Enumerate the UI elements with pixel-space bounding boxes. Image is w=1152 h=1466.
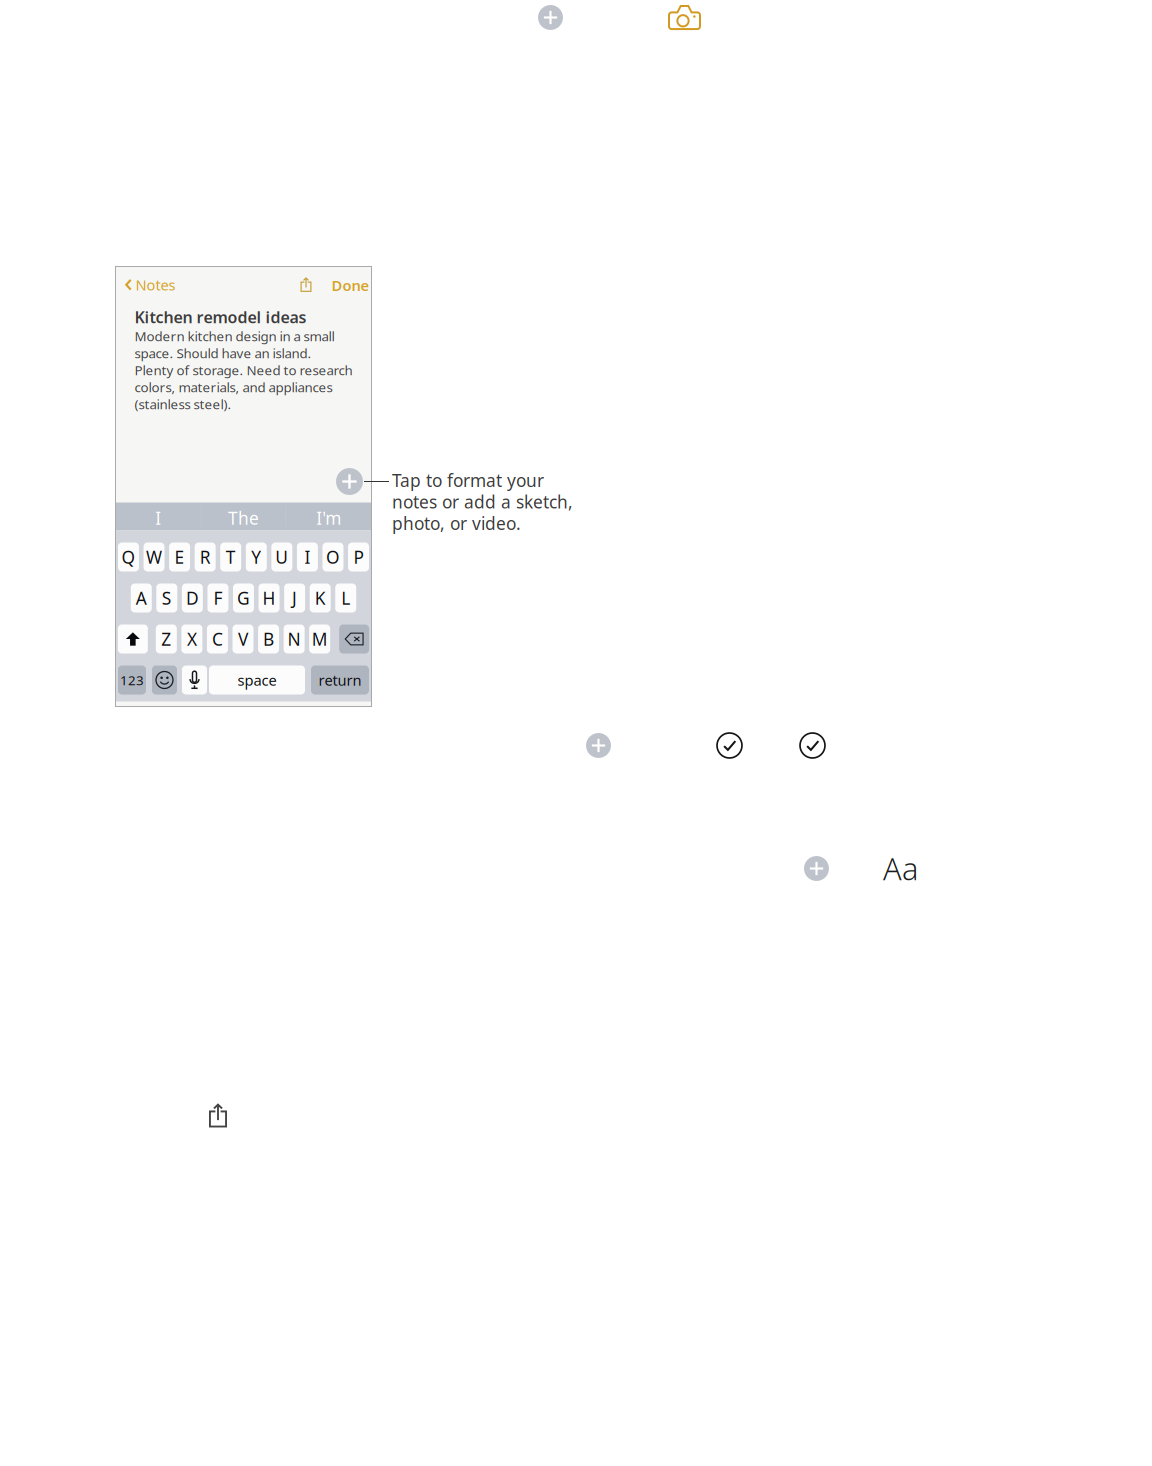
button[interactable]: D [182, 583, 203, 612]
button[interactable]: Delete [339, 624, 369, 653]
button[interactable]: 123 [118, 665, 146, 694]
staticText: T [226, 545, 236, 568]
staticText: K [315, 586, 326, 609]
staticText: Tap to format your [392, 469, 544, 492]
button[interactable]: V [232, 624, 253, 653]
staticText: S [162, 586, 172, 609]
button[interactable]: P [348, 542, 369, 571]
button[interactable]: E [169, 542, 190, 571]
button[interactable]: The [201, 502, 286, 530]
button[interactable]: N [284, 624, 305, 653]
staticText: B [263, 627, 274, 650]
button[interactable]: S [156, 583, 177, 612]
staticText: P [353, 545, 363, 568]
staticText: J [292, 586, 297, 609]
staticText: Q [121, 545, 135, 568]
button[interactable]: B [258, 624, 279, 653]
staticText: photo, or video. [392, 512, 521, 535]
button[interactable]: return [311, 665, 369, 694]
button[interactable]: I'm [286, 502, 371, 530]
button[interactable]: T [220, 542, 241, 571]
button[interactable]: U [271, 542, 292, 571]
staticText: F [213, 586, 222, 609]
staticText: space. Should have an island. [134, 344, 311, 362]
staticText: I [304, 545, 310, 568]
button[interactable]: H [259, 583, 280, 612]
staticText: I [155, 506, 161, 529]
staticText: E [175, 545, 185, 568]
button[interactable]: J [284, 583, 305, 612]
button[interactable]: I [115, 502, 201, 530]
staticText: 123 [120, 671, 144, 689]
staticText: Modern kitchen design in a small [134, 327, 334, 345]
button[interactable]: W [144, 542, 165, 571]
staticText: U [275, 545, 288, 568]
button[interactable]: Notes [125, 275, 176, 294]
staticText: I'm [316, 506, 341, 529]
button[interactable]: G [233, 583, 254, 612]
button[interactable]: R [195, 542, 216, 571]
staticText: O [326, 545, 340, 568]
staticText: C [212, 627, 223, 650]
button[interactable]: F [207, 583, 228, 612]
button[interactable]: C [207, 624, 228, 653]
button[interactable]: A [131, 583, 152, 612]
staticText: L [341, 586, 350, 609]
button[interactable]: Y [246, 542, 267, 571]
button[interactable]: M [309, 624, 330, 653]
staticText: D [186, 586, 199, 609]
button[interactable]: L [335, 583, 356, 612]
button[interactable]: Done [331, 275, 369, 295]
staticText: X [187, 627, 197, 650]
staticText: colors, materials, and appliances [134, 378, 332, 396]
staticText: (stainless steel). [134, 395, 231, 413]
button[interactable]: X [181, 624, 202, 653]
button[interactable]: Z [156, 624, 177, 653]
button[interactable]: space [209, 665, 305, 694]
button[interactable]: Format [336, 468, 363, 495]
button[interactable]: K [310, 583, 331, 612]
staticText: G [237, 586, 250, 609]
staticText: Plenty of storage. Need to research [134, 361, 352, 379]
button[interactable]: Share [300, 277, 311, 292]
staticText: notes or add a sketch, [392, 490, 573, 513]
staticText: V [238, 627, 248, 650]
staticText: H [263, 586, 276, 609]
staticText: Notes [136, 275, 176, 294]
staticText: Done [331, 275, 369, 295]
staticText: M [312, 627, 328, 650]
staticText: N [288, 627, 301, 650]
staticText: Y [251, 545, 261, 568]
staticText: W [146, 545, 162, 568]
button[interactable]: Dictation [182, 665, 207, 694]
button[interactable]: Shift [118, 624, 148, 653]
staticText: space [237, 670, 276, 690]
button[interactable]: Emoji [152, 665, 177, 694]
staticText: Aa [883, 848, 918, 889]
button[interactable]: Q [118, 542, 139, 571]
staticText: Kitchen remodel ideas [134, 306, 306, 328]
button[interactable]: O [322, 542, 343, 571]
staticText: R [200, 545, 211, 568]
button[interactable]: I [297, 542, 318, 571]
staticText: The [228, 506, 259, 529]
staticText: Z [161, 627, 171, 650]
staticText: A [136, 586, 147, 609]
staticText: return [318, 670, 361, 690]
